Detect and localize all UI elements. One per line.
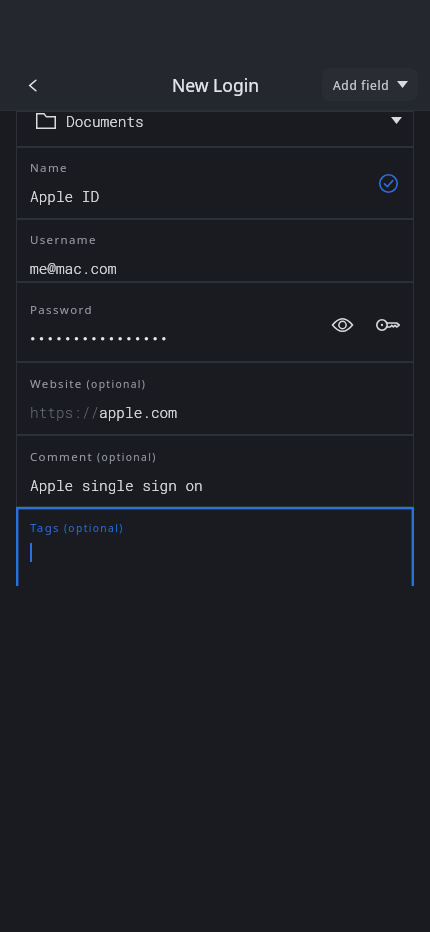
button[interactable]: Tags (optional) [16, 507, 414, 586]
button[interactable]: Documents [16, 111, 414, 147]
staticText: New Login [172, 73, 259, 97]
staticText: Tags (optional) [30, 520, 124, 536]
staticText: Comment (optional) [30, 449, 157, 465]
button[interactable]: Add field [322, 68, 418, 101]
staticText: https://apple.com [30, 403, 177, 422]
button[interactable]: Generate password [365, 302, 411, 348]
staticText: me@mac.com [30, 259, 117, 278]
staticText: Apple ID [30, 187, 100, 206]
staticText: Website (optional) [30, 376, 147, 392]
staticText: Password [30, 302, 93, 318]
staticText: Name [30, 160, 68, 176]
button[interactable]: Comment (optional) [16, 435, 414, 507]
button[interactable]: Website (optional) [16, 362, 414, 435]
staticText: Add field [333, 77, 390, 93]
button[interactable]: Back [10, 63, 54, 107]
button[interactable]: Name [16, 147, 414, 219]
staticText: Apple single sign on [30, 476, 203, 495]
staticText: Documents [66, 112, 144, 131]
button[interactable]: Show password [319, 302, 365, 348]
staticText: Username [30, 232, 97, 248]
button[interactable]: Password [16, 282, 414, 362]
button[interactable]: Username [16, 219, 414, 282]
